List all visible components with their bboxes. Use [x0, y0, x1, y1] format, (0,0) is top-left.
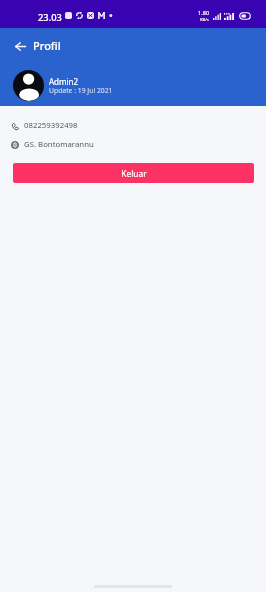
- staticText: 082259392498: [24, 120, 78, 131]
- staticText: GS. Bontomarannu: [24, 139, 94, 150]
- staticText: Keluar: [121, 168, 147, 179]
- staticText: Admin2: [49, 76, 79, 87]
- button[interactable]: GS. Bontomarannu: [11, 139, 266, 150]
- staticText: KB/s: [200, 17, 209, 23]
- staticText: Update : 19 Jul 2021: [49, 86, 113, 95]
- staticText: Profil: [33, 38, 61, 53]
- button[interactable]: Back: [11, 37, 29, 55]
- button[interactable]: Keluar: [13, 163, 254, 183]
- staticText: 1.80: [198, 9, 210, 17]
- staticText: 23.03: [38, 11, 62, 24]
- button[interactable]: 082259392498: [11, 120, 266, 131]
